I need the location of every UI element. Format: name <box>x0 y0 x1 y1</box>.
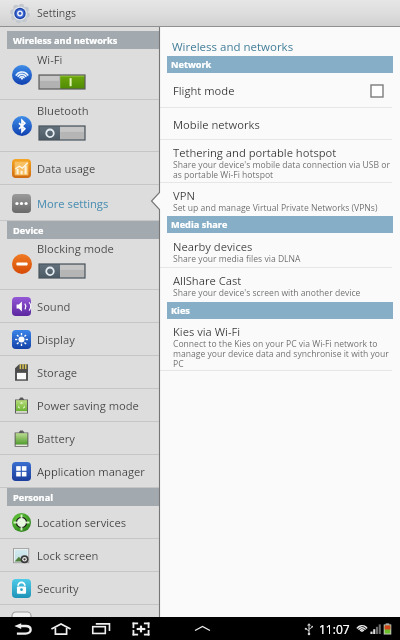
staticText: 11:07 <box>319 621 350 637</box>
button[interactable]: Nearby devices <box>160 234 400 268</box>
staticText: Lock screen <box>37 548 99 563</box>
button[interactable]: More settings <box>0 185 160 221</box>
staticText: Share your media files via DLNA <box>173 253 301 265</box>
button[interactable]: Screenshot <box>130 617 152 640</box>
staticText: Power saving mode <box>37 398 139 413</box>
button[interactable]: Data usage <box>0 152 160 185</box>
button[interactable]: Developer options <box>0 605 160 638</box>
staticText: Network <box>171 58 212 71</box>
staticText: Settings <box>37 6 76 20</box>
staticText: Blocking mode <box>37 241 114 256</box>
staticText: Storage <box>37 365 77 380</box>
staticText: Display <box>37 332 75 347</box>
button[interactable]: Display <box>0 323 160 356</box>
button[interactable]: Kies via Wi-Fi <box>160 319 400 371</box>
staticText: Share your device's screen with another … <box>173 287 361 299</box>
staticText: Sound <box>37 299 71 314</box>
staticText: Set up and manage Virtual Private Networ… <box>173 202 378 214</box>
staticText: Data usage <box>37 161 96 176</box>
staticText: Application manager <box>37 464 145 479</box>
staticText: Security <box>37 581 79 596</box>
button[interactable]: Flight mode checkbox <box>371 85 383 97</box>
staticText: Connect to the Kies on your PC via Wi-Fi… <box>173 338 389 369</box>
button[interactable]: Wi-Fi on <box>39 75 85 89</box>
staticText: Bluetooth <box>37 103 89 118</box>
staticText: Share your device's mobile data connecti… <box>173 159 390 180</box>
staticText: Nearby devices <box>173 239 253 254</box>
button[interactable]: Location services <box>0 506 160 539</box>
button[interactable]: Bluetooth <box>0 100 160 152</box>
staticText: Flight mode <box>173 83 235 98</box>
staticText: VPN <box>173 188 195 203</box>
staticText: Media share <box>171 218 228 231</box>
button[interactable]: Blocking mode <box>0 238 160 290</box>
button[interactable]: Wi-Fi <box>0 49 160 100</box>
button[interactable]: Back <box>12 617 34 640</box>
button[interactable]: Battery <box>0 422 160 455</box>
button[interactable]: Flight mode <box>160 73 400 108</box>
button[interactable]: Blocking mode off <box>39 264 85 278</box>
staticText: Kies <box>171 304 190 317</box>
button[interactable]: Application manager <box>0 455 160 488</box>
button[interactable]: Storage <box>0 356 160 389</box>
staticText: Tethering and portable hotspot <box>173 145 337 160</box>
staticText: Battery <box>37 431 75 446</box>
button[interactable]: Sound <box>0 290 160 323</box>
button[interactable]: Mobile networks <box>160 108 400 140</box>
button[interactable]: VPN <box>160 183 400 216</box>
staticText: Wireless and networks <box>172 39 294 55</box>
button[interactable]: AllShare Cast <box>160 268 400 302</box>
staticText: Mobile networks <box>173 117 260 132</box>
button[interactable]: Tethering and portable hotspot <box>160 140 400 183</box>
button[interactable]: Lock screen <box>0 539 160 572</box>
button[interactable]: Home <box>50 617 72 640</box>
button[interactable]: Recents <box>90 617 112 640</box>
staticText: Wi-Fi <box>37 52 63 67</box>
button[interactable]: Power saving mode <box>0 389 160 422</box>
button[interactable]: Bluetooth off <box>39 126 85 140</box>
button[interactable]: Show hidden icons <box>191 617 213 640</box>
staticText: Device <box>13 224 44 237</box>
staticText: Location services <box>37 515 127 530</box>
staticText: More settings <box>37 196 109 211</box>
staticText: AllShare Cast <box>173 273 242 288</box>
staticText: Wireless and networks <box>13 34 118 47</box>
staticText: Developer options <box>37 614 133 629</box>
staticText: Kies via Wi-Fi <box>173 324 241 339</box>
button[interactable]: Security <box>0 572 160 605</box>
staticText: Personal <box>13 491 54 504</box>
